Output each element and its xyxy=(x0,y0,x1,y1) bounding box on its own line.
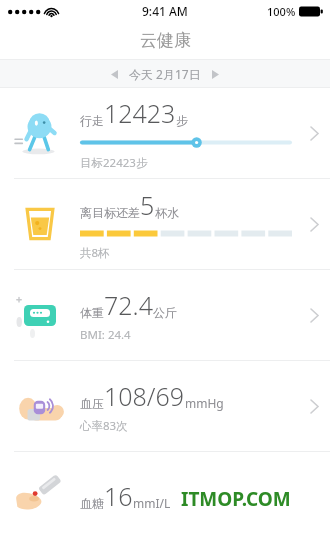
staticText: 步 xyxy=(176,113,188,128)
other: Open detail xyxy=(310,126,319,141)
other: Previous day xyxy=(111,70,118,79)
staticText: mmI/L xyxy=(133,495,171,511)
button[interactable]: 体重 xyxy=(0,270,330,360)
button[interactable]: 离目标还差 xyxy=(0,179,330,269)
other: Open detail xyxy=(310,217,319,232)
staticText: 行走 xyxy=(80,113,104,128)
button[interactable]: 血压 xyxy=(0,361,330,451)
staticText: 共8杯 xyxy=(80,245,110,261)
staticText: 72.4 xyxy=(104,288,153,322)
staticText: 血糖 xyxy=(80,496,104,511)
staticText: 100% xyxy=(267,4,296,19)
staticText: 体重 xyxy=(80,305,104,320)
staticText: 血压 xyxy=(80,396,104,411)
button[interactable]: Previous day xyxy=(0,60,330,87)
staticText: 心率83次 xyxy=(80,418,128,434)
staticText: 12423 xyxy=(104,96,176,130)
staticText: 云健康 xyxy=(140,30,191,51)
staticText: mmHg xyxy=(185,395,224,411)
staticText: BMI: 24.4 xyxy=(80,327,131,343)
staticText: 108/69 xyxy=(104,379,185,413)
staticText: 今天 2月17日 xyxy=(129,66,201,82)
other: Next day xyxy=(212,70,219,79)
other: Open detail xyxy=(310,399,319,414)
staticText: 离目标还差 xyxy=(80,205,140,220)
staticText: 杯水 xyxy=(155,205,179,220)
staticText: 16 xyxy=(104,479,133,513)
staticText: 9:41 AM xyxy=(142,3,188,19)
button[interactable]: 行走 xyxy=(0,88,330,178)
staticText: ITMOP.COM xyxy=(181,486,291,512)
button[interactable]: 血糖 xyxy=(0,452,330,540)
other: Open detail xyxy=(310,308,319,323)
staticText: 目标22423步 xyxy=(80,155,148,171)
staticText: 公斤 xyxy=(153,305,177,320)
staticText: 5 xyxy=(140,188,155,222)
